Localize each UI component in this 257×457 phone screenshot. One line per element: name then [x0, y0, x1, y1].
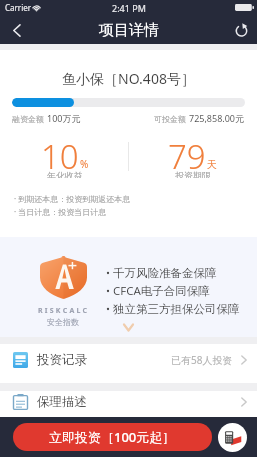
staticText: Carrier [5, 2, 32, 13]
staticText: 79 [168, 134, 206, 176]
button[interactable]: Calculator [218, 423, 247, 452]
staticText: 已有58人投资 [171, 353, 233, 367]
staticText: 10 [41, 134, 79, 176]
button[interactable]: 立即投资［100元起］ [13, 423, 212, 451]
button[interactable]: Back [0, 16, 32, 44]
staticText: 可投金额 [154, 113, 189, 124]
staticText: 2:41 PM [112, 2, 146, 14]
staticText: 投资期限 [175, 170, 211, 181]
staticText: 100万元 [47, 112, 81, 124]
staticText: 投资记录 [37, 352, 87, 368]
staticText: 独立第三方担保公司保障 [113, 302, 240, 316]
staticText: · 到期还本息：投资到期返还本息 [14, 193, 131, 204]
button[interactable]: 保理描述 [0, 391, 257, 417]
button[interactable]: Refresh [225, 16, 257, 44]
staticText: · 当日计息：投资当日计息 [14, 206, 107, 217]
staticText: 鱼小保［NO.408号］ [0, 69, 257, 88]
staticText: 千万风险准备金保障 [113, 266, 217, 280]
staticText: 年化收益 [47, 170, 83, 181]
staticText: 立即投资［100元起］ [49, 428, 176, 446]
staticText: R I S K C A L C [38, 306, 88, 316]
staticText: 保理描述 [37, 394, 87, 410]
staticText: % [80, 157, 89, 171]
staticText: 725,858.00元 [189, 112, 245, 124]
staticText: 天 [207, 158, 217, 171]
staticText: CFCA电子合同保障 [113, 283, 210, 299]
staticText: 融资金额 [12, 113, 47, 124]
button[interactable]: 投资记录 [0, 344, 257, 383]
staticText: 项目详情 [99, 21, 159, 40]
staticText: 安全指数 [47, 317, 79, 327]
